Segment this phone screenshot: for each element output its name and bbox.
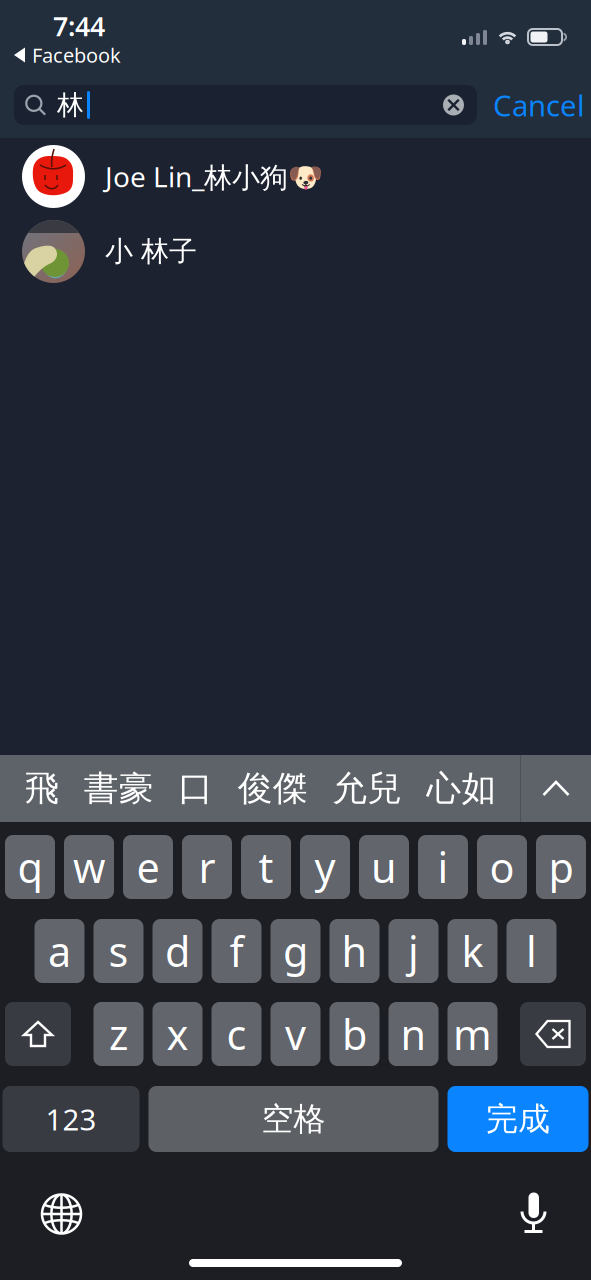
button[interactable]: 完成 [447, 1086, 588, 1152]
button[interactable]: f [211, 919, 261, 983]
button[interactable]: n [388, 1002, 438, 1066]
staticText: j [408, 924, 419, 978]
staticText: w [73, 840, 105, 894]
staticText: z [109, 1007, 128, 1061]
button[interactable]: w [64, 835, 114, 899]
button[interactable]: m [447, 1002, 497, 1066]
button[interactable]: q [5, 835, 55, 899]
staticText: 123 [45, 1099, 96, 1138]
button[interactable]: d [152, 919, 202, 983]
staticText: v [285, 1007, 306, 1061]
staticText: d [165, 924, 190, 978]
staticText: 完成 [486, 1099, 550, 1139]
staticText: 7:44 [53, 8, 105, 44]
button[interactable]: Delete [520, 1002, 586, 1066]
button[interactable]: t [241, 835, 291, 899]
button[interactable]: 123 [2, 1086, 139, 1152]
button[interactable]: g [270, 919, 320, 983]
staticText: 口 [178, 767, 213, 810]
staticText: 林 [57, 89, 84, 121]
staticText: 小 林子 [105, 234, 197, 269]
button[interactable]: Next keyboard [0, 1194, 81, 1233]
button[interactable]: Cancel [477, 85, 591, 125]
staticText: h [341, 924, 367, 978]
staticText: q [17, 840, 42, 894]
button[interactable]: j [388, 919, 438, 983]
button[interactable]: 允兒 [332, 767, 402, 810]
button[interactable]: z [93, 1002, 143, 1066]
staticText: 飛 [24, 767, 59, 810]
button[interactable]: Dictate [518, 1191, 591, 1237]
staticText: 書豪 [84, 767, 154, 810]
staticText: u [371, 840, 397, 894]
staticText: b [342, 1007, 367, 1061]
button[interactable]: h [329, 919, 379, 983]
button[interactable]: s [93, 919, 143, 983]
button[interactable]: b [329, 1002, 379, 1066]
staticText: 空格 [261, 1099, 325, 1139]
staticText: x [166, 1007, 188, 1061]
staticText: t [258, 840, 273, 894]
button[interactable]: y [300, 835, 350, 899]
staticText: p [548, 840, 573, 894]
staticText: s [108, 924, 128, 978]
button[interactable]: a [34, 919, 84, 983]
button[interactable]: e [123, 835, 173, 899]
staticText: f [229, 924, 243, 978]
button[interactable]: l [506, 919, 556, 983]
button[interactable]: c [211, 1002, 261, 1066]
button[interactable]: i [418, 835, 468, 899]
staticText: Joe Lin_林小狗🐶 [105, 158, 323, 195]
button[interactable]: Expand candidates [521, 755, 591, 822]
staticText: c [226, 1007, 246, 1061]
staticText: a [48, 924, 71, 978]
staticText: e [136, 840, 159, 894]
button[interactable]: k [447, 919, 497, 983]
button[interactable]: Shift [5, 1002, 71, 1066]
button[interactable]: x [152, 1002, 202, 1066]
staticText: r [198, 840, 215, 894]
button[interactable]: p [536, 835, 586, 899]
staticText: Facebook [32, 42, 121, 68]
staticText: m [453, 1007, 492, 1061]
staticText: n [400, 1007, 426, 1061]
staticText: y [314, 840, 335, 894]
button[interactable]: 空格 [148, 1086, 438, 1152]
staticText: 心如 [427, 767, 497, 810]
staticText: Cancel [493, 85, 585, 124]
button[interactable]: u [359, 835, 409, 899]
button[interactable]: r [182, 835, 232, 899]
button[interactable]: 口 [178, 767, 213, 810]
staticText: i [437, 840, 448, 894]
button[interactable]: v [270, 1002, 320, 1066]
staticText: g [283, 924, 308, 978]
button[interactable]: Facebook [0, 44, 591, 74]
button[interactable]: o [477, 835, 527, 899]
button[interactable]: 心如 [427, 767, 497, 810]
button[interactable]: Joe Lin_林小狗🐶 [0, 145, 591, 208]
staticText: 允兒 [332, 767, 402, 810]
button[interactable]: 小 林子 [0, 220, 591, 283]
button[interactable]: 飛 [24, 767, 59, 810]
staticText: k [461, 924, 483, 978]
staticText: o [489, 840, 514, 894]
staticText: 俊傑 [238, 767, 308, 810]
button[interactable]: 書豪 [84, 767, 154, 810]
button[interactable]: 俊傑 [238, 767, 308, 810]
staticText: l [526, 924, 537, 978]
